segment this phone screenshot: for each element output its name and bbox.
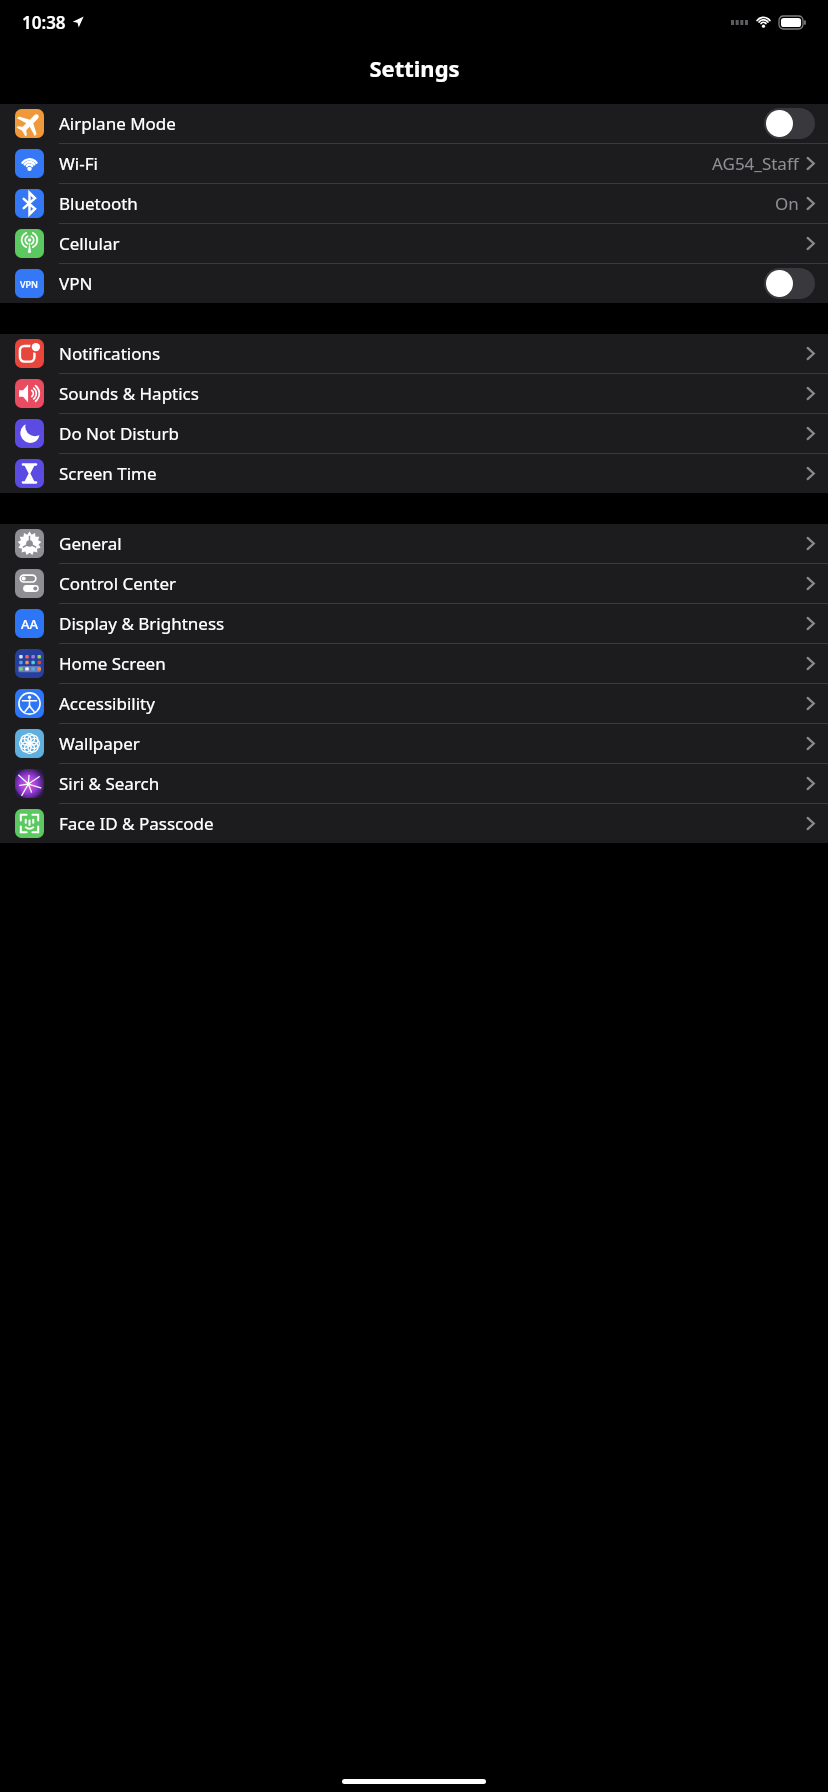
button[interactable]: Bluetooth bbox=[0, 184, 828, 224]
button[interactable]: VPN bbox=[0, 264, 828, 303]
staticText: Bluetooth bbox=[59, 192, 138, 215]
staticText: Home Screen bbox=[59, 652, 166, 675]
staticText: Cellular bbox=[59, 232, 120, 255]
staticText: Screen Time bbox=[59, 462, 157, 485]
staticText: Accessibility bbox=[59, 692, 155, 715]
button[interactable]: Accessibility bbox=[0, 684, 828, 724]
button[interactable]: Wallpaper bbox=[0, 724, 828, 764]
button[interactable]: Face ID & Passcode bbox=[0, 804, 828, 843]
staticText: 10:38 bbox=[22, 11, 66, 34]
button[interactable]: Airplane Mode bbox=[764, 108, 815, 139]
button[interactable]: Notifications bbox=[0, 334, 828, 374]
staticText: Face ID & Passcode bbox=[59, 812, 214, 835]
button[interactable]: Screen Time bbox=[0, 454, 828, 493]
staticText: Do Not Disturb bbox=[59, 422, 179, 445]
staticText: VPN bbox=[59, 272, 93, 295]
staticText: Control Center bbox=[59, 572, 177, 595]
button[interactable]: Home Screen bbox=[0, 644, 828, 684]
staticText: Siri & Search bbox=[59, 772, 160, 795]
button[interactable]: Sounds & Haptics bbox=[0, 374, 828, 414]
staticText: VPN bbox=[20, 278, 39, 290]
button[interactable]: Do Not Disturb bbox=[0, 414, 828, 454]
staticText: Settings bbox=[369, 53, 460, 83]
staticText: On bbox=[775, 192, 799, 215]
button[interactable]: Siri & Search bbox=[0, 764, 828, 804]
staticText: Airplane Mode bbox=[59, 112, 176, 135]
button[interactable]: Control Center bbox=[0, 564, 828, 604]
button[interactable]: Wi-Fi bbox=[0, 144, 828, 184]
button[interactable]: General bbox=[0, 524, 828, 564]
staticText: Wi-Fi bbox=[59, 152, 98, 175]
staticText: Wallpaper bbox=[59, 732, 140, 755]
staticText: Notifications bbox=[59, 342, 161, 365]
button[interactable]: Cellular bbox=[0, 224, 828, 264]
staticText: General bbox=[59, 532, 122, 555]
staticText: Sounds & Haptics bbox=[59, 382, 199, 405]
staticText: AG54_Staff bbox=[712, 152, 799, 175]
staticText: AA bbox=[21, 615, 39, 633]
button[interactable]: Airplane Mode bbox=[0, 104, 828, 144]
staticText: Display & Brightness bbox=[59, 612, 225, 635]
button[interactable]: AA bbox=[0, 604, 828, 644]
button[interactable]: VPN bbox=[764, 268, 815, 299]
